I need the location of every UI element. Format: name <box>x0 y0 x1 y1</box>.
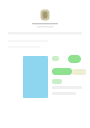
button[interactable]: Crest <box>0 9 90 21</box>
button[interactable]: Approved <box>52 68 72 75</box>
button[interactable]: Pending <box>52 79 62 84</box>
button[interactable]: Verified <box>68 55 81 63</box>
button[interactable]: Status <box>52 56 59 61</box>
